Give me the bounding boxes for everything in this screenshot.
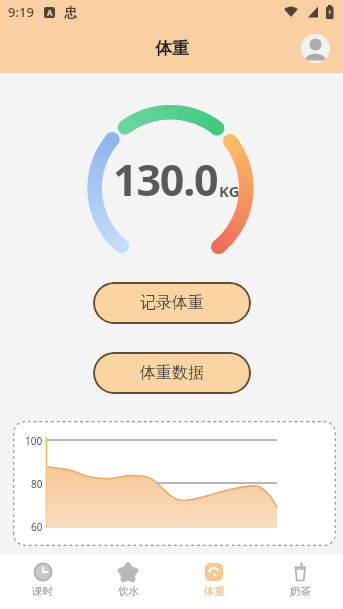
staticText: 奶茶 <box>290 585 311 598</box>
staticText: A <box>47 7 53 18</box>
button[interactable]: 课时 <box>0 554 85 609</box>
staticText: 记录体重 <box>140 293 204 313</box>
staticText: 60 <box>31 520 43 534</box>
staticText: 课时 <box>32 585 53 598</box>
staticText: 9:19 <box>8 3 34 21</box>
staticText: 100 <box>25 434 43 448</box>
button[interactable]: 体重数据 <box>93 352 251 394</box>
staticText: 体重 <box>204 585 225 598</box>
button[interactable]: 记录体重 <box>93 282 251 324</box>
staticText: 130.0 <box>113 150 218 209</box>
staticText: 忠 <box>64 4 77 20</box>
staticText: 体重数据 <box>140 363 204 383</box>
button[interactable]: 体重 <box>171 554 257 609</box>
button[interactable]: 饮水 <box>85 554 171 609</box>
staticText: 饮水 <box>118 585 139 598</box>
button[interactable] <box>301 34 330 63</box>
staticText: 体重 <box>155 38 189 59</box>
button[interactable]: 奶茶 <box>257 554 343 609</box>
staticText: KG <box>219 181 240 201</box>
staticText: 80 <box>31 477 43 491</box>
